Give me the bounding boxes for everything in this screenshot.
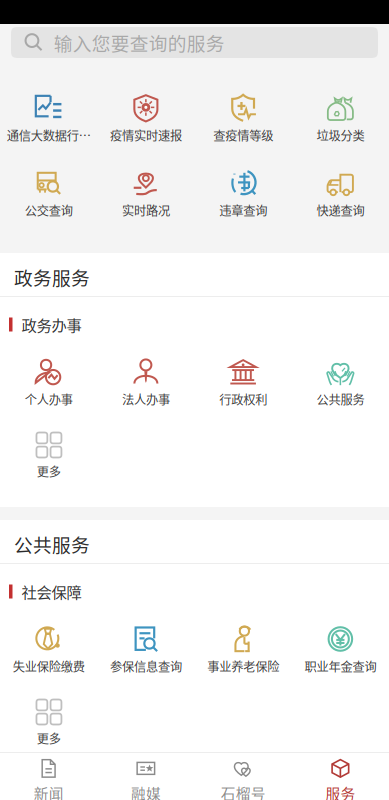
staticText: 新闻 [34,782,64,800]
staticText: 社会保障 [21,580,81,603]
button[interactable]: 输入您要查询的服务 [11,27,378,58]
staticText: 更多 [37,462,61,480]
button[interactable]: 违章查询 [194,167,292,219]
button[interactable]: 行政权利 [194,356,292,408]
button[interactable]: 垃圾分类 [292,92,389,144]
staticText: 政务服务 [14,263,90,290]
button[interactable]: 失业保险缴费 [0,623,97,675]
button[interactable]: 通信大数据行… [0,92,97,144]
staticText: 融媒 [131,782,161,800]
staticText: 实时路况 [122,201,170,219]
staticText: 法人办事 [122,390,170,408]
staticText: 政务办事 [21,313,81,336]
button[interactable]: 更多 [0,695,97,747]
staticText: 事业养老保险 [207,657,279,675]
button[interactable]: 融媒 [97,749,194,800]
button[interactable]: 个人办事 [0,356,97,408]
staticText: 石榴号 [221,782,266,800]
staticText: 服务 [325,782,355,800]
button[interactable]: 公交查询 [0,167,97,219]
button[interactable]: 职业年金查询 [292,623,389,675]
button[interactable]: 服务 [292,749,389,800]
button[interactable]: 更多 [0,428,97,480]
staticText: 通信大数据行… [7,126,91,144]
staticText: 疫情实时速报 [110,126,182,144]
staticText: 查疫情等级 [213,126,273,144]
button[interactable]: 公共服务 [292,356,389,408]
staticText: 更多 [37,729,61,747]
staticText: 参保信息查询 [110,657,182,675]
button[interactable]: 查疫情等级 [194,92,292,144]
button[interactable]: 快递查询 [292,167,389,219]
button[interactable]: 新闻 [0,749,97,800]
button[interactable]: 石榴号 [194,749,292,800]
button[interactable]: 疫情实时速报 [97,92,194,144]
button[interactable]: 实时路况 [97,167,194,219]
button[interactable]: 事业养老保险 [194,623,292,675]
staticText: 公共服务 [316,390,364,408]
staticText: 公共服务 [14,530,90,557]
staticText: 违章查询 [219,201,267,219]
button[interactable]: 参保信息查询 [97,623,194,675]
staticText: 失业保险缴费 [13,657,85,675]
staticText: 输入您要查询的服务 [54,29,225,56]
staticText: 快递查询 [316,201,364,219]
staticText: 垃圾分类 [316,126,364,144]
staticText: 行政权利 [219,390,267,408]
staticText: 个人办事 [25,390,73,408]
button[interactable]: 法人办事 [97,356,194,408]
staticText: 公交查询 [25,201,73,219]
staticText: 职业年金查询 [304,657,376,675]
